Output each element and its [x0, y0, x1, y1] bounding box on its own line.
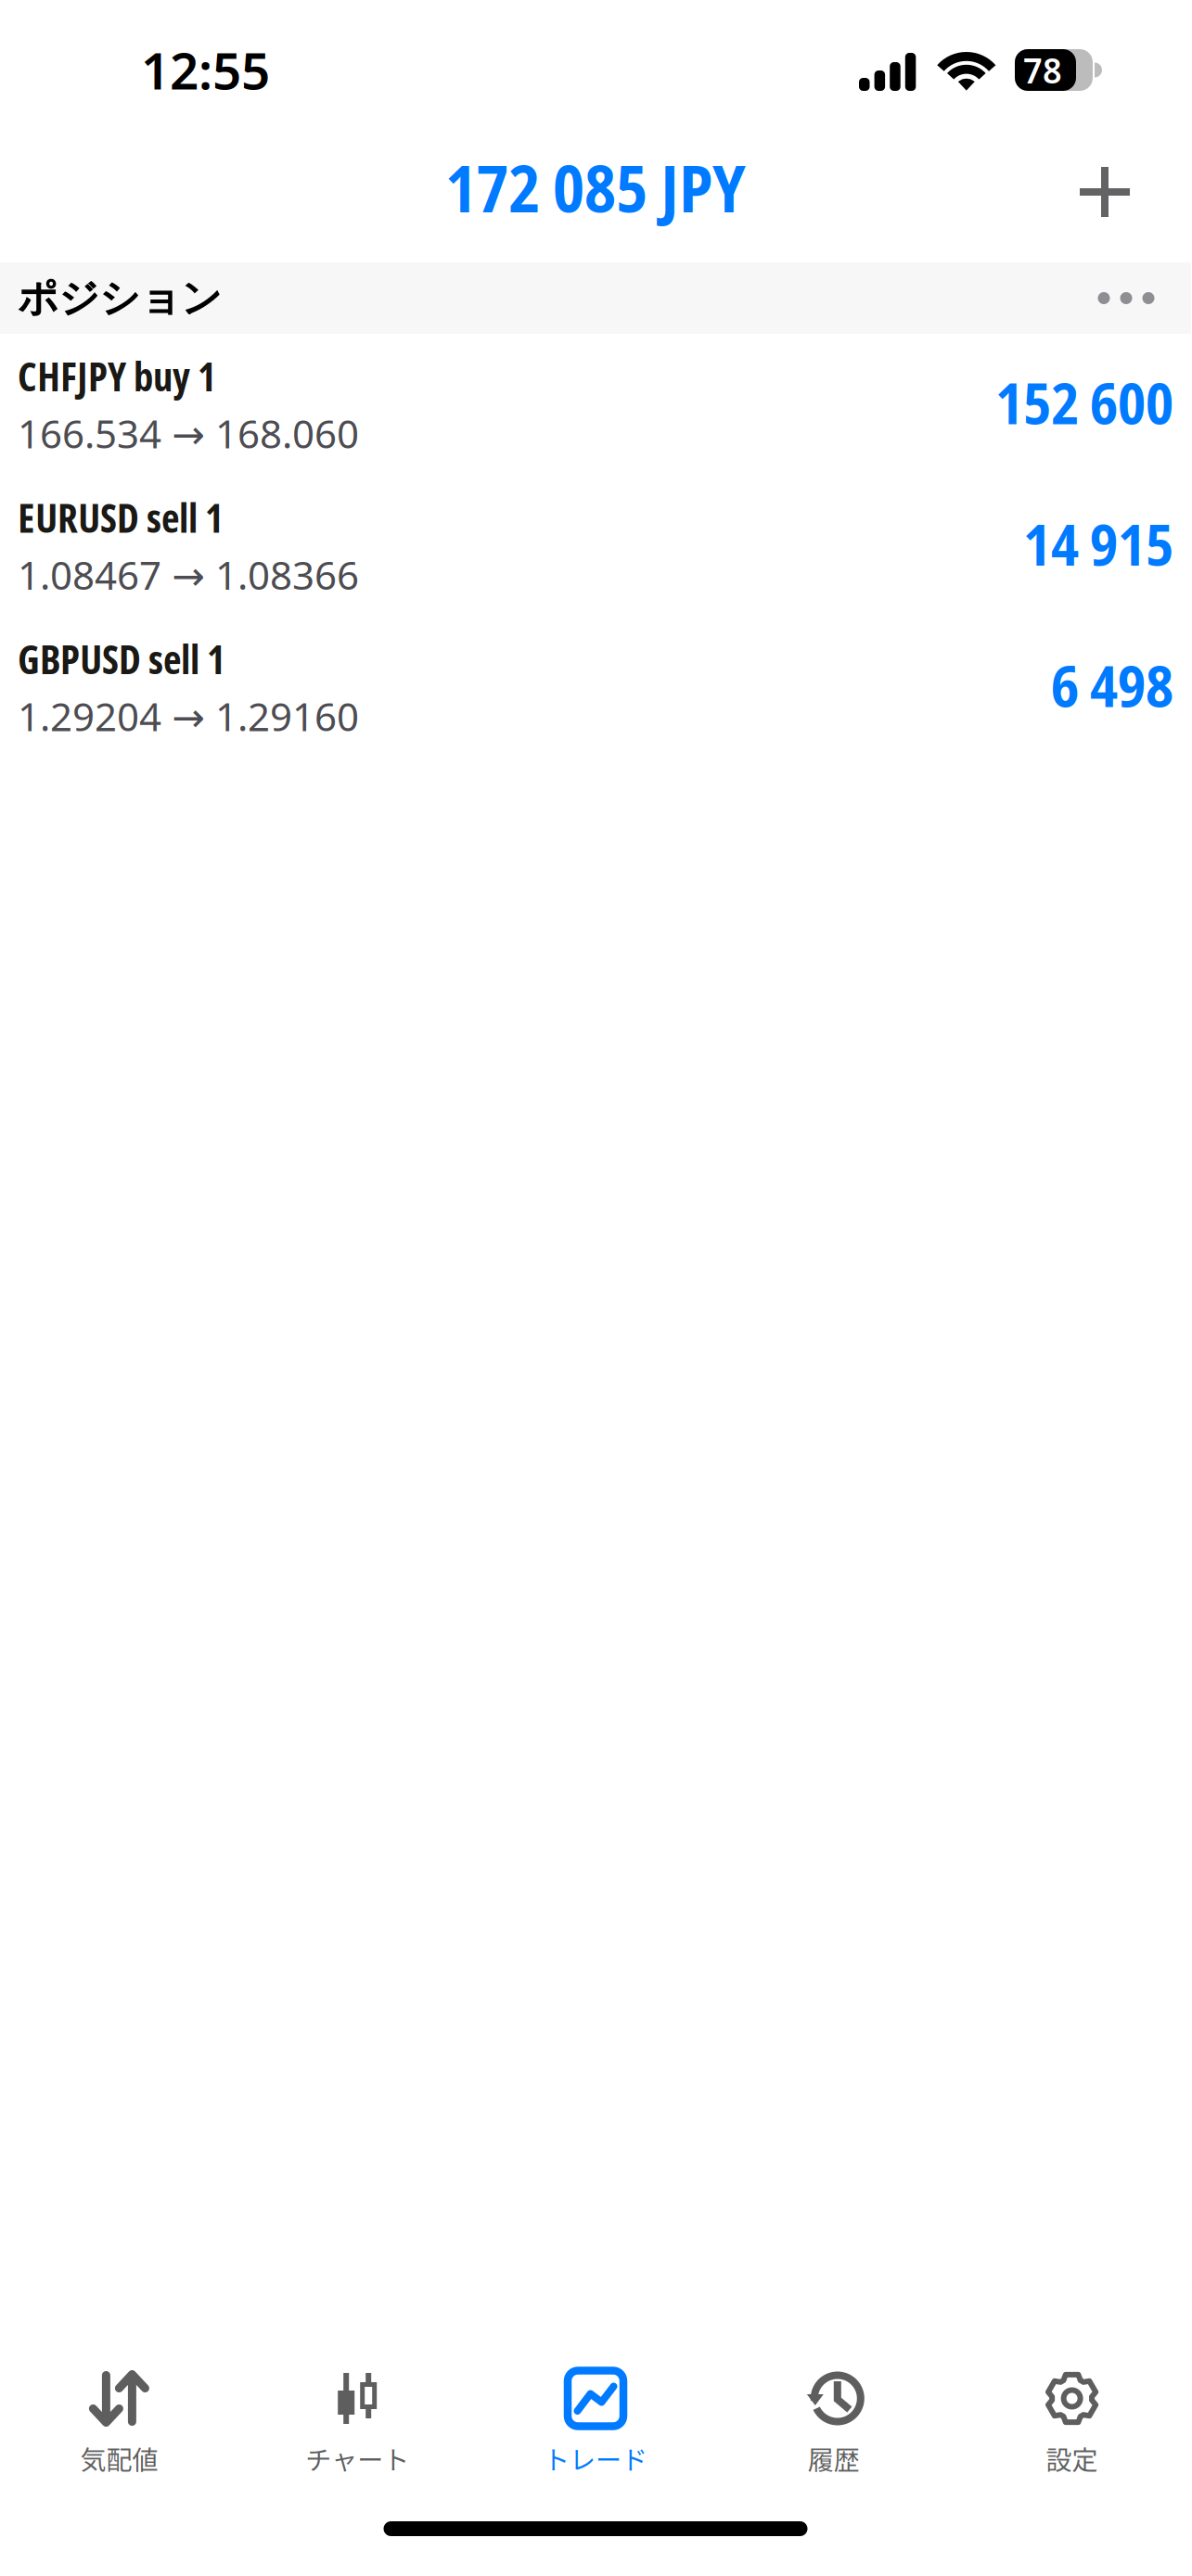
staticText: 6 498: [1051, 646, 1173, 724]
button[interactable]: 設定: [953, 2345, 1191, 2481]
staticText: 78: [1023, 46, 1062, 94]
staticText: 14 915: [1023, 505, 1173, 582]
button[interactable]: GBPUSD sell 1: [0, 617, 1191, 758]
staticText: CHFJPY buy 1: [18, 350, 216, 402]
staticText: 設定: [1046, 2440, 1098, 2477]
staticText: 172 085 JPY: [445, 144, 746, 231]
button[interactable]: 気配値: [0, 2345, 238, 2481]
button[interactable]: 履歴: [715, 2345, 953, 2481]
staticText: トレード: [544, 2440, 647, 2477]
staticText: チャート: [305, 2440, 409, 2477]
button[interactable]: EURUSD sell 1: [0, 475, 1191, 617]
button[interactable]: チャート: [238, 2345, 476, 2481]
staticText: 履歴: [808, 2440, 860, 2477]
staticText: 気配値: [80, 2440, 158, 2477]
staticText: 152 600: [995, 363, 1173, 441]
staticText: 1.29204 → 1.29160: [18, 689, 359, 743]
staticText: ポジション: [18, 273, 222, 323]
button[interactable]: CHFJPY buy 1: [0, 334, 1191, 475]
staticText: 12:55: [141, 35, 270, 104]
staticText: 1.08467 → 1.08366: [18, 548, 359, 601]
button[interactable]: Options: [1061, 262, 1191, 334]
staticText: 166.534 → 168.060: [18, 406, 359, 460]
staticText: EURUSD sell 1: [18, 491, 224, 544]
button[interactable]: トレード: [476, 2345, 715, 2481]
button[interactable]: New order: [1046, 143, 1191, 241]
staticText: GBPUSD sell 1: [18, 632, 225, 685]
